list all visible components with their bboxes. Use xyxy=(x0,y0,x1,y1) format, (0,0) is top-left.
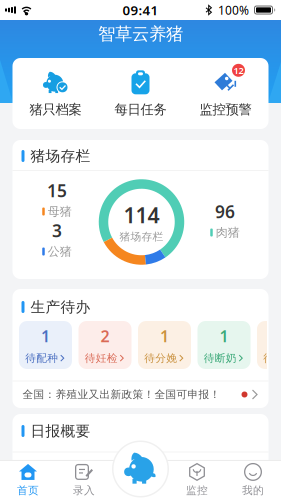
staticText: 114 xyxy=(123,201,159,229)
staticText: 全国：养殖业又出新政策！全国可申报！ xyxy=(22,388,220,401)
button[interactable]: 监控 xyxy=(169,460,225,499)
staticText: 1 xyxy=(41,325,50,346)
staticText: 猪场存栏 xyxy=(30,147,90,165)
button[interactable]: 1 xyxy=(19,321,72,369)
staticText: 我的 xyxy=(242,484,264,497)
button[interactable]: 1 xyxy=(197,321,250,369)
button[interactable]: 全国：养殖业又出新政策！全国可申报！ xyxy=(12,381,268,407)
button[interactable]: 录入 xyxy=(56,460,112,499)
button[interactable]: 1 xyxy=(138,321,191,369)
staticText: 待断奶 xyxy=(204,352,237,365)
staticText: 1 xyxy=(160,325,169,346)
button[interactable]: 每日任务 xyxy=(98,63,183,123)
button[interactable]: 养猪 xyxy=(112,440,169,497)
button[interactable]: 猪只档案 xyxy=(13,63,98,123)
staticText: 12 xyxy=(233,64,243,76)
button[interactable]: 2 xyxy=(78,321,131,369)
staticText: 15 xyxy=(47,179,67,202)
staticText: 公猪 xyxy=(48,244,72,259)
staticText: 待出栏 xyxy=(263,352,281,365)
button[interactable]: 3 xyxy=(257,321,281,369)
button[interactable]: 12 xyxy=(183,63,268,123)
staticText: 96 xyxy=(215,200,235,223)
staticText: 肉猪 xyxy=(216,225,240,240)
staticText: 监控预警 xyxy=(199,101,251,118)
staticText: 录入 xyxy=(73,484,95,497)
staticText: 猪场存栏 xyxy=(119,230,163,243)
staticText: 监控 xyxy=(186,484,208,497)
staticText: 生产待办 xyxy=(30,298,90,316)
staticText: 09:41 xyxy=(122,1,158,19)
staticText: 3 xyxy=(52,219,62,242)
staticText: 智草云养猪 xyxy=(98,23,183,45)
staticText: 待妊检 xyxy=(85,352,118,365)
button[interactable]: 首页 xyxy=(0,460,56,499)
staticText: 1 xyxy=(219,325,228,346)
staticText: 每日任务 xyxy=(114,101,166,118)
staticText: 猪只档案 xyxy=(29,101,81,118)
staticText: 母猪 xyxy=(48,204,72,219)
staticText: 待配种 xyxy=(25,352,58,365)
staticText: 日报概要 xyxy=(30,422,90,440)
staticText: 待分娩 xyxy=(144,352,177,365)
staticText: 首页 xyxy=(17,484,39,497)
staticText: 2 xyxy=(100,325,109,346)
button[interactable]: 我的 xyxy=(225,460,281,499)
staticText: 100% xyxy=(218,2,249,18)
